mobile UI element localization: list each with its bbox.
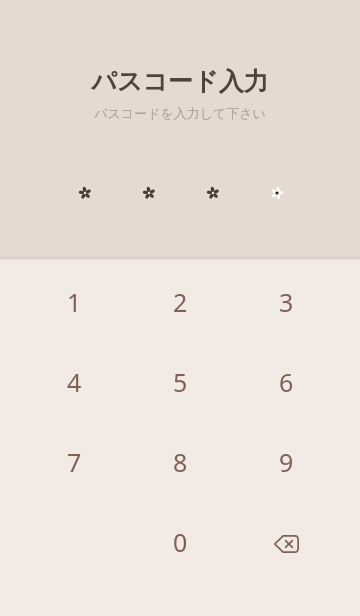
button[interactable]: 9 bbox=[249, 422, 323, 502]
staticText: 4 bbox=[67, 365, 82, 399]
staticText: 7 bbox=[67, 445, 82, 479]
button[interactable]: 6 bbox=[249, 342, 323, 422]
staticText: 2 bbox=[173, 285, 188, 319]
button[interactable]: 7 bbox=[37, 422, 111, 502]
staticText: 1 bbox=[67, 285, 82, 319]
button[interactable]: 3 bbox=[249, 262, 323, 342]
button[interactable]: 4 bbox=[37, 342, 111, 422]
staticText: 9 bbox=[279, 445, 294, 479]
button[interactable]: 1 bbox=[37, 262, 111, 342]
staticText: パスコード入力 bbox=[91, 66, 269, 97]
button[interactable]: 2 bbox=[143, 262, 217, 342]
staticText: 6 bbox=[279, 365, 294, 399]
button[interactable]: 8 bbox=[143, 422, 217, 502]
button[interactable]: 0 bbox=[143, 502, 217, 582]
staticText: パスコードを入力して下さい bbox=[94, 105, 266, 121]
staticText: 3 bbox=[279, 285, 294, 319]
button[interactable]: 5 bbox=[143, 342, 217, 422]
button[interactable]: Backspace bbox=[249, 502, 323, 582]
staticText: 0 bbox=[173, 525, 188, 559]
staticText: 8 bbox=[173, 445, 188, 479]
staticText: 5 bbox=[173, 365, 188, 399]
